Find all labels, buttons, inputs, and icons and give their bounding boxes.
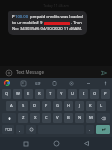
button[interactable]: L <box>97 101 106 111</box>
staticText: . Trxn <box>71 20 82 26</box>
button[interactable]: Y <box>57 89 66 99</box>
button[interactable]: Shift <box>2 113 16 123</box>
staticText: Today 11:46 am <box>43 3 69 8</box>
button[interactable]: D <box>30 101 40 111</box>
button[interactable]: P <box>101 89 110 99</box>
button[interactable]: I <box>79 89 88 99</box>
staticText: P <box>12 14 15 20</box>
staticText: E <box>27 91 30 97</box>
staticText: to ur mobile# 9 <box>12 20 43 26</box>
staticText: . <box>89 127 91 132</box>
button[interactable]: H <box>64 101 73 111</box>
staticText: H <box>67 103 71 109</box>
button[interactable]: T <box>46 89 55 99</box>
staticText: Text Message <box>16 69 44 75</box>
button[interactable]: O <box>90 89 99 99</box>
button[interactable]: B <box>64 113 73 123</box>
button[interactable]: E <box>24 89 33 99</box>
button[interactable]: W <box>13 89 22 99</box>
button[interactable]: Q <box>2 89 11 99</box>
staticText: , <box>19 127 21 132</box>
staticText: P <box>104 91 107 97</box>
staticText: G <box>56 103 60 109</box>
button[interactable]: Recents <box>20 138 31 149</box>
staticText: M <box>89 115 93 121</box>
staticText: prepaid credits was loaded <box>29 14 83 20</box>
staticText: J <box>79 103 81 109</box>
staticText: N <box>78 115 82 121</box>
button[interactable]: P <box>8 11 87 35</box>
staticText: R <box>38 91 41 97</box>
staticText: Y <box>60 91 63 97</box>
button[interactable]: GIF <box>35 81 41 86</box>
button[interactable]: Home <box>51 138 62 149</box>
staticText: L <box>100 103 103 109</box>
button[interactable]: G <box>53 101 62 111</box>
button[interactable]: ?123 <box>2 125 14 134</box>
button[interactable]: . <box>86 125 94 134</box>
button[interactable]: X <box>30 113 40 123</box>
button[interactable]: , <box>16 125 24 134</box>
staticText: K <box>89 103 92 109</box>
staticText: S <box>22 103 25 109</box>
button[interactable]: V <box>53 113 62 123</box>
button[interactable]: A <box>6 101 16 111</box>
staticText: B <box>67 115 70 121</box>
staticText: Z <box>22 115 25 121</box>
staticText: D <box>33 103 37 109</box>
staticText: GIF <box>35 81 41 86</box>
staticText: 100.00 <box>15 14 29 20</box>
staticText: O <box>93 91 97 97</box>
button[interactable]: Text Message <box>16 69 99 75</box>
button[interactable]: S <box>18 101 28 111</box>
button[interactable]: Back <box>81 138 92 149</box>
staticText: W <box>16 91 20 97</box>
button[interactable]: Clipboard <box>50 79 58 87</box>
button[interactable]: U <box>68 89 77 99</box>
staticText: No: 343035#6 04/30/2020 11:46AM. <box>12 26 83 32</box>
button[interactable]: Stickers <box>19 79 27 87</box>
staticText: Q <box>5 91 9 97</box>
staticText: C <box>45 115 48 121</box>
button[interactable]: More <box>84 79 92 87</box>
staticText: I <box>83 91 85 97</box>
button[interactable]: Add attachment <box>4 68 13 77</box>
staticText: F <box>45 103 48 109</box>
button[interactable]: Send <box>99 68 108 77</box>
button[interactable]: Settings <box>67 79 75 87</box>
button[interactable]: M <box>86 113 95 123</box>
button[interactable]: K <box>86 101 95 111</box>
button[interactable]: R <box>35 89 44 99</box>
button[interactable]: Enter <box>96 125 110 134</box>
staticText: V <box>56 115 59 121</box>
button[interactable]: J <box>75 101 84 111</box>
staticText: X <box>34 115 37 121</box>
staticText: A <box>10 103 13 109</box>
button[interactable]: Emoji <box>26 125 36 134</box>
button[interactable]: Google search <box>3 79 11 87</box>
button[interactable]: Backspace <box>97 113 110 123</box>
button[interactable]: N <box>75 113 84 123</box>
button[interactable]: F <box>42 101 51 111</box>
button[interactable]: C <box>42 113 51 123</box>
staticText: U <box>71 91 75 97</box>
button[interactable]: Voice input <box>101 79 109 87</box>
staticText: T <box>49 91 52 97</box>
staticText: ?123 <box>5 128 12 132</box>
button[interactable]: Z <box>18 113 28 123</box>
